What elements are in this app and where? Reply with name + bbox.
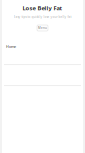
- staticText: Menu: [38, 26, 47, 30]
- staticText: Easy tips to quickly lose your belly fat: [13, 15, 71, 19]
- staticText: Lose Belly Fat: [22, 4, 62, 12]
- button[interactable]: Menu: [37, 25, 48, 31]
- staticText: Home: [6, 44, 16, 49]
